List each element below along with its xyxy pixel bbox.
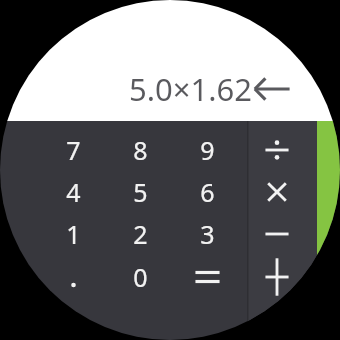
staticText: 4 [66, 175, 81, 209]
staticText: 0 [133, 260, 148, 294]
button[interactable]: Plus [243, 256, 311, 298]
staticText: 7 [66, 133, 81, 167]
staticText: 2 [133, 217, 148, 251]
staticText: 8 [133, 133, 148, 167]
staticText: 9 [200, 133, 215, 167]
staticText: 3 [200, 217, 215, 251]
staticText: 5.0×1.62 [128, 68, 252, 110]
button[interactable]: 7 [40, 129, 107, 171]
staticText: 6 [200, 175, 215, 209]
button[interactable]: Decimal point [40, 256, 107, 298]
button[interactable]: Divide [243, 129, 311, 171]
button[interactable]: 8 [107, 129, 174, 171]
button[interactable]: 3 [174, 213, 241, 255]
button[interactable]: Minus [243, 213, 311, 255]
button[interactable]: 6 [174, 171, 241, 213]
button[interactable]: 5 [107, 171, 174, 213]
button[interactable]: Backspace [250, 66, 294, 112]
button[interactable]: 9 [174, 129, 241, 171]
button[interactable]: 1 [40, 213, 107, 255]
staticText: 1 [66, 217, 81, 251]
staticText: 5 [133, 175, 148, 209]
button[interactable]: Equals [174, 256, 241, 298]
button[interactable]: 0 [107, 256, 174, 298]
button[interactable]: 5.0×1.62 [0, 0, 340, 340]
button[interactable]: Multiply [243, 171, 311, 213]
button[interactable]: 2 [107, 213, 174, 255]
button[interactable]: 4 [40, 171, 107, 213]
